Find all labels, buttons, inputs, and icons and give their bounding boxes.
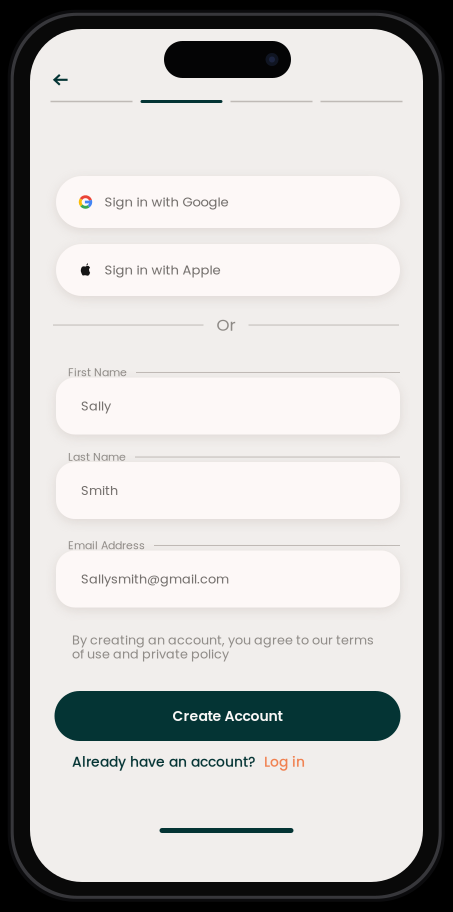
staticText: Email Address: [68, 538, 145, 553]
staticText: Or: [216, 313, 235, 336]
button[interactable]: Sallysmith@gmail.com: [56, 550, 400, 607]
staticText: Sallysmith@gmail.com: [81, 570, 229, 588]
staticText: Sally: [81, 397, 111, 415]
button[interactable]: Smith: [56, 462, 400, 519]
staticText: Smith: [81, 481, 118, 499]
staticText: Log in: [264, 752, 305, 772]
staticText: Last Name: [68, 449, 126, 465]
button[interactable]: Back: [39, 58, 83, 102]
button[interactable]: Sign in with Google: [56, 176, 400, 228]
staticText: By creating an account, you agree to our…: [72, 631, 374, 649]
staticText: Sign in with Apple: [105, 261, 221, 279]
staticText: of use and private policy: [72, 645, 229, 663]
button[interactable]: Create Account: [54, 691, 400, 741]
staticText: First Name: [68, 365, 127, 380]
staticText: Sign in with Google: [105, 193, 229, 211]
button[interactable]: Already have an account?: [72, 751, 402, 773]
staticText: Already have an account?: [72, 752, 255, 772]
staticText: Create Account: [172, 706, 282, 726]
button[interactable]: Sally: [56, 377, 400, 434]
button[interactable]: Sign in with Apple: [56, 244, 400, 296]
